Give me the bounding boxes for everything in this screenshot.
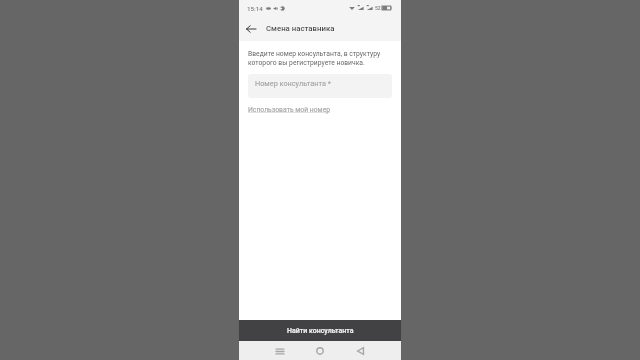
- staticText: 15:14: [247, 5, 263, 12]
- button[interactable]: Номер консультанта *: [248, 74, 392, 98]
- staticText: Номер консультанта *: [255, 79, 331, 88]
- staticText: Введите номер консультанта, в структуру …: [248, 50, 392, 66]
- button[interactable]: Recent apps: [272, 343, 288, 359]
- staticText: Использовать мой номер: [248, 106, 331, 114]
- staticText: Смена наставника: [266, 24, 335, 33]
- button[interactable]: Использовать мой номер: [248, 106, 331, 114]
- button[interactable]: Back: [352, 343, 368, 359]
- staticText: 52: [375, 5, 381, 11]
- button[interactable]: Back: [242, 20, 260, 38]
- button[interactable]: Найти консультанта: [239, 320, 401, 341]
- staticText: Найти консультанта: [287, 327, 354, 335]
- button[interactable]: Home: [312, 343, 328, 359]
